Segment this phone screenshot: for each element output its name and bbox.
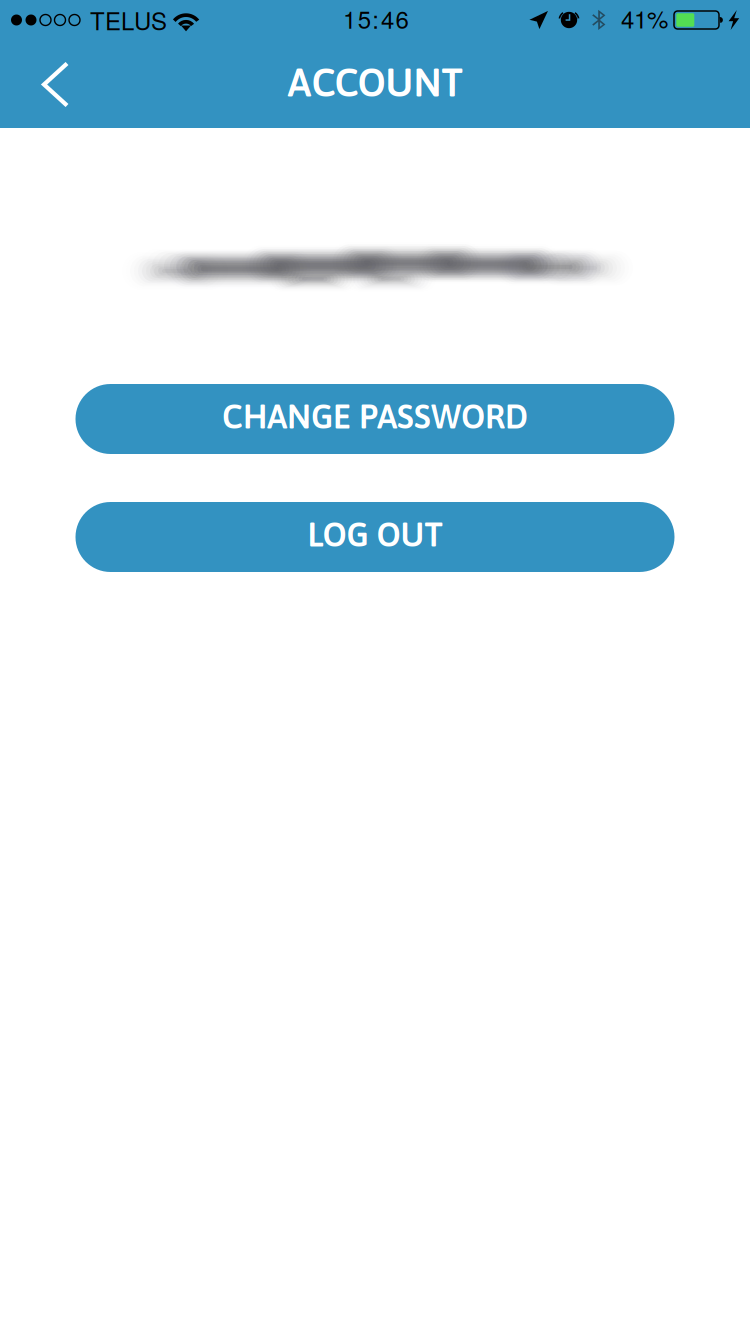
staticText: CHANGE PASSWORD xyxy=(222,397,528,435)
staticText: LOG OUT xyxy=(307,515,442,553)
button[interactable]: LOG OUT xyxy=(75,502,674,572)
staticText: TELUS xyxy=(90,3,167,37)
button[interactable]: CHANGE PASSWORD xyxy=(75,384,674,454)
staticText: 41% xyxy=(621,1,668,35)
staticText: 15:46 xyxy=(343,1,408,36)
staticText: ACCOUNT xyxy=(287,60,462,105)
button[interactable]: Back xyxy=(0,40,94,128)
